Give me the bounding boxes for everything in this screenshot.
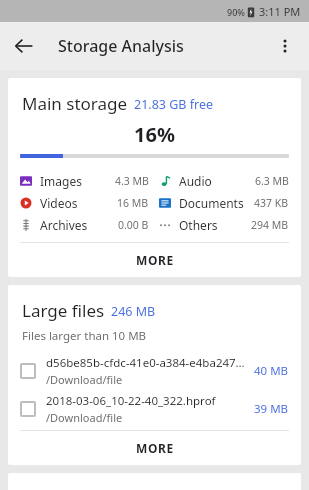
- staticText: Large files: [22, 299, 105, 322]
- staticText: 90%: [227, 6, 245, 18]
- staticText: 39 MB: [254, 401, 289, 417]
- staticText: 246 MB: [111, 303, 156, 320]
- staticText: /Download/file: [46, 372, 123, 387]
- button[interactable]: Audio: [159, 170, 289, 192]
- staticText: Images: [40, 173, 82, 189]
- staticText: 3:11 PM: [259, 4, 301, 19]
- staticText: Others: [179, 217, 218, 233]
- button[interactable]: MORE: [8, 243, 301, 277]
- button[interactable]: Documents: [159, 192, 289, 214]
- button[interactable]: Others: [159, 214, 289, 236]
- staticText: Audio: [179, 173, 212, 189]
- staticText: 0.00 B: [118, 218, 149, 232]
- staticText: 2018-03-06_10-22-40_322.hprof: [46, 393, 216, 409]
- other: Select file: [20, 401, 36, 417]
- button[interactable]: More options: [261, 22, 309, 70]
- staticText: 294 MB: [251, 218, 289, 232]
- button[interactable]: Select file: [8, 390, 301, 428]
- staticText: 6.3 MB: [255, 174, 289, 188]
- staticText: Documents: [179, 195, 244, 211]
- staticText: d56be85b-cfdc-41e0-a384-e4ba247be…: [46, 355, 248, 371]
- staticText: Storage Analysis: [58, 35, 184, 57]
- staticText: 16%: [134, 121, 175, 148]
- staticText: /Download/file: [46, 410, 123, 425]
- staticText: MORE: [136, 440, 174, 456]
- button[interactable]: Images: [20, 170, 149, 192]
- button[interactable]: MORE: [8, 431, 301, 465]
- staticText: Main storage: [22, 92, 128, 115]
- staticText: Archives: [40, 217, 88, 233]
- button[interactable]: Archives: [20, 214, 149, 236]
- button[interactable]: Back: [0, 22, 48, 70]
- staticText: 437 KB: [254, 196, 289, 210]
- staticText: 21.83 GB free: [134, 96, 213, 113]
- button[interactable]: Videos: [20, 192, 149, 214]
- staticText: Files larger than 10 MB: [22, 328, 147, 344]
- staticText: 16 MB: [117, 196, 149, 210]
- button[interactable]: Select file: [8, 352, 301, 390]
- staticText: Videos: [40, 195, 78, 211]
- staticText: 40 MB: [254, 363, 289, 379]
- staticText: 4.3 MB: [115, 174, 149, 188]
- other: Select file: [20, 363, 36, 379]
- staticText: MORE: [136, 252, 174, 268]
